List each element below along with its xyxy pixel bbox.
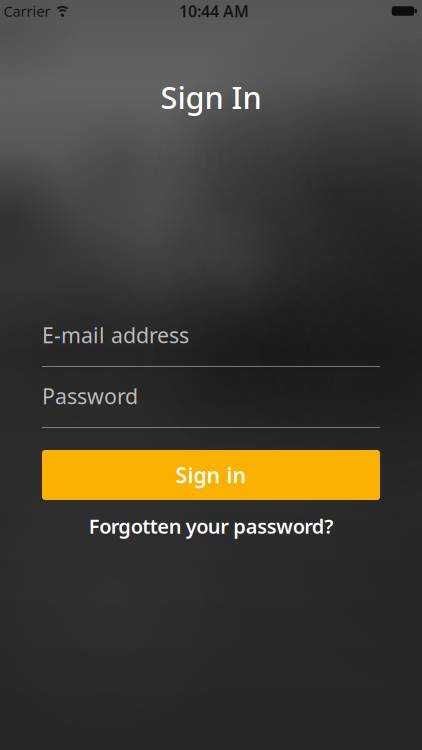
staticText: Sign in xyxy=(175,461,246,489)
staticText: Carrier xyxy=(3,1,50,21)
staticText: Sign In xyxy=(160,77,261,117)
staticText: Password xyxy=(42,382,138,410)
button[interactable]: Sign in xyxy=(42,450,380,500)
staticText: Forgotten your password? xyxy=(89,513,333,539)
button[interactable]: Password xyxy=(42,378,380,431)
button[interactable]: Forgotten your password? xyxy=(89,513,333,539)
staticText: E-mail address xyxy=(42,321,189,349)
staticText: 10:44 AM xyxy=(179,0,249,22)
button[interactable]: E-mail address xyxy=(42,317,380,370)
